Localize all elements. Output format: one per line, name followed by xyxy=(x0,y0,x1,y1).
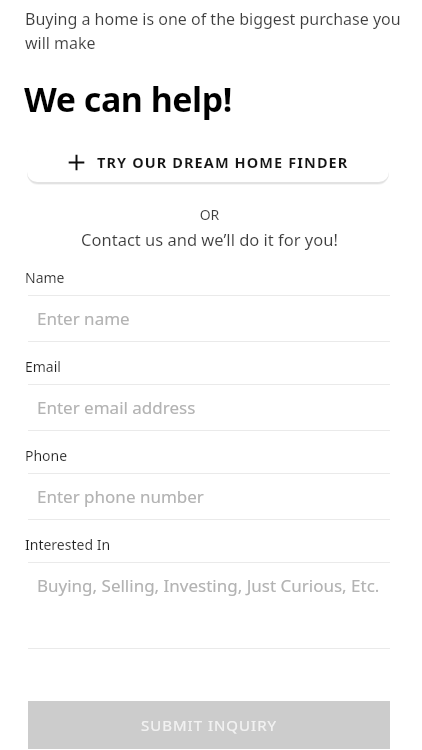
button[interactable]: Buying, Selling, Investing, Just Curious… xyxy=(28,563,390,648)
staticText: OR xyxy=(0,205,419,224)
staticText: Phone xyxy=(25,446,68,465)
staticText: Enter email address xyxy=(37,396,196,419)
button[interactable]: Enter email address xyxy=(28,385,390,430)
staticText: TRY OUR DREAM HOME FINDER xyxy=(97,152,349,172)
staticText: Enter name xyxy=(37,307,130,330)
button[interactable]: Enter name xyxy=(28,296,390,341)
staticText: SUBMIT INQUIRY xyxy=(141,715,277,735)
staticText: Interested In xyxy=(25,535,111,554)
button[interactable]: SUBMIT INQUIRY xyxy=(28,701,390,749)
staticText: Buying a home is one of the biggest purc… xyxy=(25,8,409,54)
staticText: Enter phone number xyxy=(37,485,204,508)
staticText: Email xyxy=(25,357,61,376)
staticText: We can help! xyxy=(24,76,232,122)
button[interactable]: Add xyxy=(27,142,389,182)
other: Add xyxy=(68,154,85,171)
staticText: Name xyxy=(25,268,65,287)
button[interactable]: Enter phone number xyxy=(28,474,390,519)
staticText: Contact us and we’ll do it for you! xyxy=(0,228,419,250)
staticText: Buying, Selling, Investing, Just Curious… xyxy=(37,574,380,597)
